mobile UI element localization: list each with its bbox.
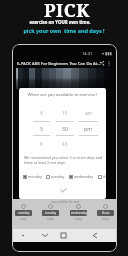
button[interactable]: tuesday bbox=[42, 204, 59, 221]
staticText: today bbox=[47, 217, 54, 221]
button[interactable]: 15 bbox=[56, 108, 74, 150]
button[interactable]: monday bbox=[22, 174, 43, 179]
staticText: thurs bbox=[102, 211, 110, 215]
staticText: tuesday bbox=[45, 211, 57, 215]
staticText: 5 bbox=[40, 125, 43, 132]
staticText: : bbox=[52, 130, 54, 135]
staticText: tuesday bbox=[51, 174, 65, 179]
staticText: 15 bbox=[62, 110, 68, 116]
staticText: 6-PACK ABS For Beginners You Can Do At..… bbox=[17, 61, 101, 67]
button[interactable]: wednesday bbox=[68, 174, 95, 179]
staticText: exercise on YOUR own time. bbox=[0, 19, 124, 25]
staticText: today bbox=[102, 217, 109, 221]
button[interactable]: monday bbox=[15, 204, 32, 221]
staticText: monday bbox=[28, 174, 42, 179]
staticText: pm bbox=[84, 125, 93, 132]
staticText: am bbox=[85, 110, 92, 116]
staticText: 4 bbox=[40, 110, 43, 116]
staticText: 6 bbox=[40, 141, 43, 147]
staticText: th bbox=[103, 174, 106, 179]
staticText: ▾ ▮▮▮ bbox=[102, 51, 112, 56]
staticText: wednesday bbox=[74, 174, 94, 179]
staticText: PICK bbox=[3, 0, 128, 23]
button[interactable]: thurs bbox=[97, 204, 114, 221]
staticText: today bbox=[20, 217, 27, 221]
button[interactable]: wednesday bbox=[70, 204, 87, 221]
button[interactable]: tuesday bbox=[45, 174, 66, 179]
staticText: 45 bbox=[62, 141, 68, 147]
staticText: wednesday bbox=[71, 211, 87, 215]
staticText: We recommend you select 3 or more days a… bbox=[24, 155, 103, 165]
staticText: 14:31 bbox=[82, 51, 93, 56]
staticText: monday bbox=[18, 211, 30, 215]
staticText: pick your own time and days ! bbox=[0, 27, 128, 34]
staticText: sorry will be fix next bbox=[51, 200, 80, 204]
button[interactable]: Confirm bbox=[59, 187, 69, 195]
button[interactable]: 4 bbox=[33, 108, 50, 150]
button[interactable]: th bbox=[97, 174, 106, 179]
button[interactable]: am bbox=[79, 108, 98, 150]
staticText: When are you available to exercise? bbox=[19, 92, 106, 98]
staticText: 30 bbox=[62, 125, 68, 132]
staticText: today bbox=[75, 217, 82, 221]
